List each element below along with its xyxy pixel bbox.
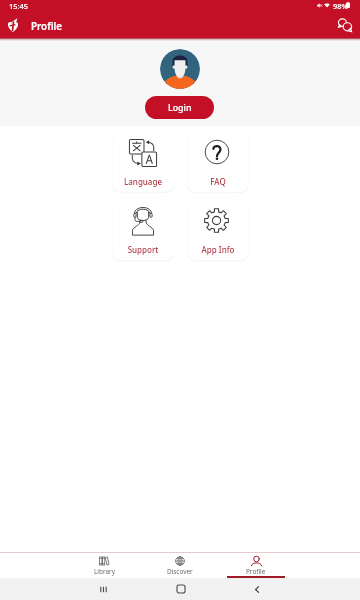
- button[interactable]: Discover: [142, 553, 218, 578]
- staticText: Library: [94, 567, 115, 576]
- button[interactable]: App Info: [188, 200, 248, 260]
- button[interactable]: Back: [219, 578, 296, 600]
- button[interactable]: Support: [113, 200, 173, 260]
- staticText: 15:45: [9, 1, 28, 11]
- button[interactable]: Home: [142, 578, 219, 600]
- button[interactable]: Messages: [331, 11, 357, 37]
- staticText: Language: [113, 176, 173, 187]
- staticText: Login: [168, 102, 192, 114]
- button[interactable]: Login: [145, 96, 214, 119]
- button[interactable]: Recent apps: [65, 578, 142, 600]
- button[interactable]: Profile picture: [160, 49, 200, 89]
- button[interactable]: Profile: [218, 553, 294, 578]
- staticText: Profile: [246, 567, 266, 576]
- button[interactable]: Language: [113, 132, 173, 192]
- button[interactable]: FAQ: [188, 132, 248, 192]
- staticText: 98%: [333, 1, 348, 11]
- staticText: App Info: [188, 244, 248, 255]
- staticText: Discover: [167, 567, 193, 576]
- staticText: Support: [113, 244, 173, 255]
- staticText: Profile: [31, 20, 63, 33]
- staticText: FAQ: [188, 176, 248, 187]
- button[interactable]: Library: [66, 553, 142, 578]
